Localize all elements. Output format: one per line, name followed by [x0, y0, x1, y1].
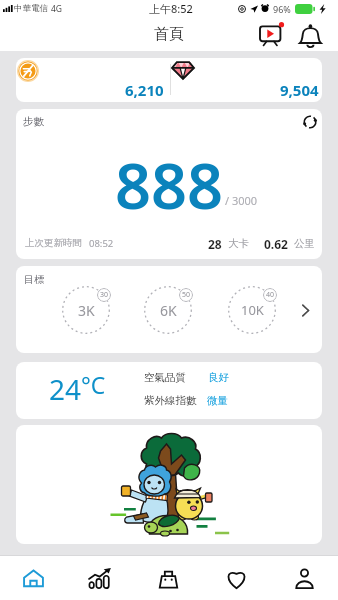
staticText: 96% — [273, 3, 291, 15]
button[interactable]: Favorites — [202, 556, 270, 600]
button[interactable]: 3K — [60, 284, 112, 336]
staticText: 4G — [51, 3, 63, 15]
staticText: 紫外線指數 — [144, 394, 197, 407]
staticText: 上次更新時間 — [25, 237, 82, 249]
staticText: 10K — [241, 301, 264, 319]
staticText: 0.62 — [264, 236, 288, 252]
button[interactable]: 6K — [142, 284, 194, 336]
staticText: 目標 — [24, 273, 44, 286]
staticText: 24 — [49, 370, 82, 408]
button[interactable]: Statistics — [67, 556, 134, 600]
button[interactable]: Notifications — [298, 20, 325, 50]
button[interactable]: Shop — [134, 556, 202, 600]
button[interactable] — [16, 425, 322, 544]
button[interactable]: Profile — [270, 556, 338, 600]
staticText: °C — [81, 369, 106, 400]
staticText: 08:52 — [89, 237, 114, 250]
button[interactable]: More goals — [293, 298, 317, 322]
staticText: 30 — [100, 290, 109, 300]
staticText: 6K — [160, 301, 177, 320]
staticText: 28 — [208, 236, 222, 252]
staticText: 中華電信 — [14, 3, 48, 14]
staticText: 6,210 — [125, 80, 164, 100]
staticText: 9,504 — [280, 80, 319, 100]
staticText: 空氣品質 — [144, 371, 186, 384]
staticText: 良好 — [208, 371, 229, 384]
staticText: / 3000 — [225, 193, 258, 208]
staticText: 大卡 — [228, 237, 249, 250]
staticText: 上午8:52 — [149, 1, 193, 16]
staticText: 步數 — [23, 115, 44, 128]
button[interactable]: Home — [0, 556, 67, 600]
staticText: 3K — [78, 301, 95, 320]
staticText: 40 — [266, 290, 275, 300]
staticText: 888 — [115, 142, 224, 228]
staticText: 50 — [182, 290, 191, 300]
button[interactable]: Refresh — [299, 111, 321, 133]
button[interactable]: 10K — [226, 284, 278, 336]
staticText: 首頁 — [154, 25, 184, 44]
button[interactable]: Coins — [16, 58, 42, 85]
staticText: 公里 — [294, 237, 315, 250]
button[interactable]: Videos — [255, 20, 285, 50]
staticText: 微量 — [207, 394, 228, 407]
